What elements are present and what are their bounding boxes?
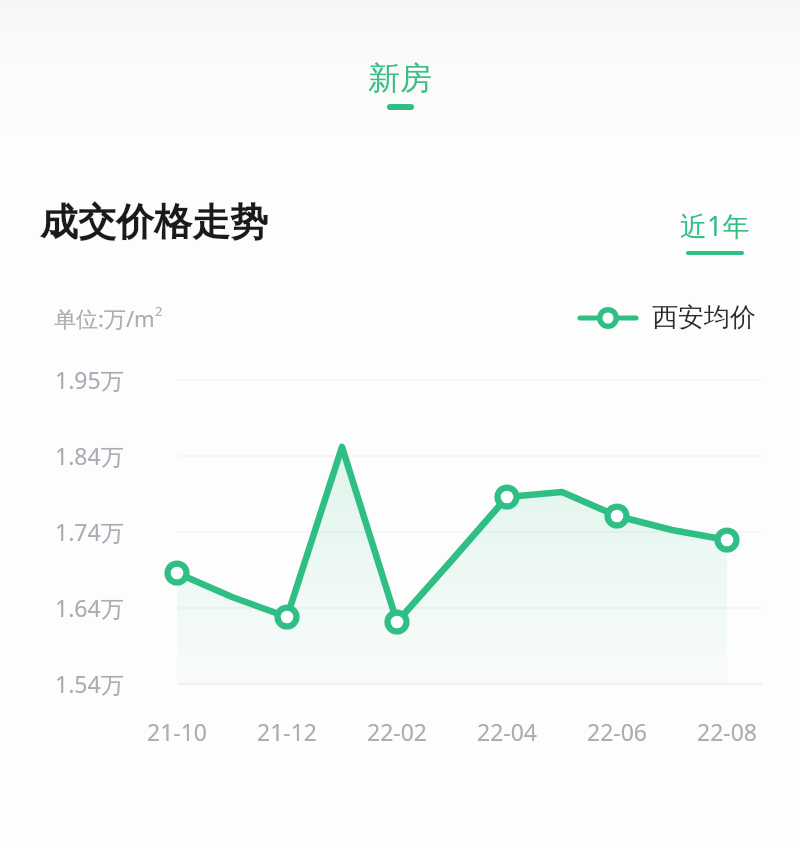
staticText: 1.74万 [55, 516, 124, 547]
staticText: 21-12 [257, 716, 318, 747]
staticText: 成交价格走势 [40, 198, 268, 246]
staticText: 1.64万 [55, 592, 124, 623]
staticText: 22-08 [697, 716, 758, 747]
staticText: 22-04 [477, 716, 538, 747]
staticText: 22-06 [587, 716, 648, 747]
button[interactable]: 西安均价 图例 [576, 301, 756, 334]
staticText: 1.84万 [55, 440, 124, 471]
button[interactable]: 近1年 [676, 206, 754, 256]
staticText: 近1年 [680, 207, 750, 244]
staticText: 西安均价 [652, 301, 756, 334]
staticText: 1.54万 [55, 668, 124, 699]
staticText: 21-10 [147, 716, 208, 747]
staticText: 单位:万/m [54, 303, 155, 333]
staticText: 2 [155, 302, 163, 320]
staticText: 22-02 [367, 716, 428, 747]
staticText: 新房 [368, 58, 432, 98]
other: 西安均价 图例 [576, 306, 640, 330]
staticText: 1.95万 [55, 364, 124, 395]
button[interactable]: 新房 [356, 57, 444, 111]
